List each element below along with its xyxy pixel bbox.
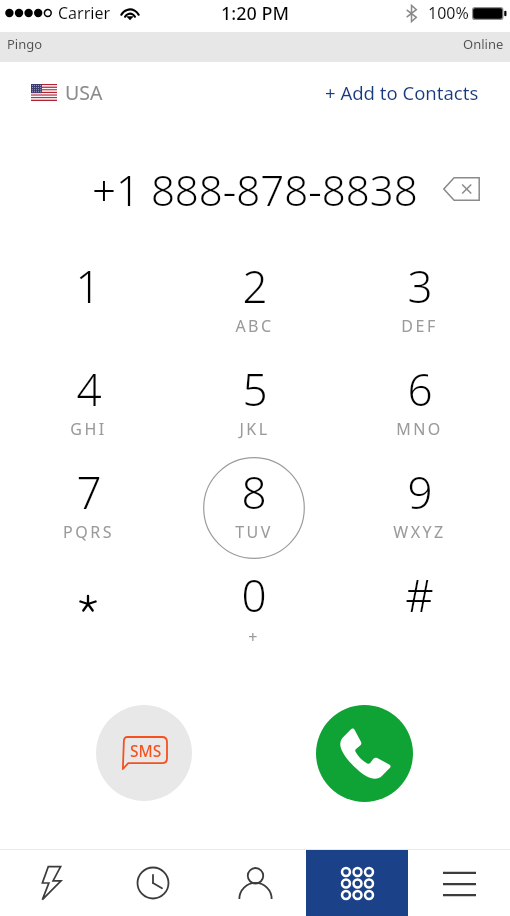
button[interactable]: 9 (337, 447, 501, 550)
staticText: GHI (70, 418, 107, 440)
button[interactable]: Call (316, 705, 413, 802)
staticText: WXYZ (393, 521, 446, 543)
staticText: SMS (130, 740, 162, 761)
button[interactable]: Keypad (306, 850, 408, 916)
button[interactable]: 3 (337, 241, 501, 344)
staticText: 9 (407, 462, 433, 522)
staticText: 0 (241, 565, 267, 625)
button[interactable]: 5 (172, 344, 336, 447)
staticText: # (405, 565, 434, 625)
staticText: 7 (76, 462, 102, 522)
staticText: 8 (241, 462, 267, 522)
staticText: 6 (407, 359, 433, 419)
staticText: DEF (401, 315, 438, 337)
button[interactable]: + Add to Contacts (325, 80, 479, 105)
button[interactable]: Speed dial (0, 850, 102, 916)
staticText: 1:20 PM (221, 1, 289, 26)
staticText: + (248, 626, 260, 648)
button[interactable]: 2 (172, 241, 336, 344)
staticText: JKL (239, 418, 270, 440)
button[interactable]: 8 (172, 447, 336, 550)
button[interactable]: 6 (337, 344, 501, 447)
button[interactable] (6, 550, 170, 653)
button[interactable]: 0 (172, 550, 336, 653)
staticText: USA (65, 79, 103, 106)
button[interactable]: Send SMS (96, 705, 192, 801)
staticText: MNO (396, 418, 443, 440)
staticText: 1 (75, 256, 101, 316)
staticText: +1 888-878-8838 (92, 161, 418, 218)
button[interactable]: Contacts (204, 850, 306, 916)
button[interactable]: Backspace (435, 167, 487, 211)
staticText: ABC (235, 315, 274, 337)
button[interactable]: Menu (408, 850, 510, 916)
button[interactable]: 7 (6, 447, 170, 550)
button[interactable]: Recents (102, 850, 204, 916)
staticText: Pingo (7, 35, 43, 53)
button[interactable]: USA (31, 79, 103, 106)
button[interactable]: 1 (6, 241, 170, 344)
staticText: 2 (242, 256, 268, 316)
staticText: 3 (407, 256, 433, 316)
staticText: 100% (428, 2, 469, 24)
button[interactable]: # (337, 550, 501, 653)
staticText: TUV (235, 521, 273, 543)
staticText: PQRS (63, 521, 114, 543)
button[interactable]: 4 (6, 344, 170, 447)
staticText: 5 (242, 359, 268, 419)
staticText: Carrier (58, 2, 111, 24)
staticText: Online (463, 35, 504, 53)
staticText: + Add to Contacts (325, 80, 479, 105)
staticText: 4 (76, 359, 102, 419)
